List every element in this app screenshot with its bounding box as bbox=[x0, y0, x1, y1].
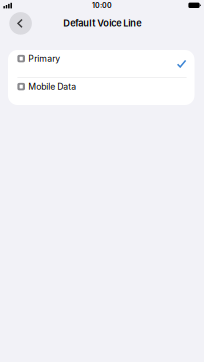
staticText: 10:00 bbox=[92, 1, 112, 10]
button[interactable]: Primary bbox=[8, 50, 194, 77]
staticText: Default Voice Line bbox=[63, 18, 141, 29]
staticText: Mobile Data bbox=[28, 81, 76, 92]
button[interactable]: Mobile Data bbox=[8, 77, 194, 104]
staticText: Primary bbox=[28, 53, 60, 64]
button[interactable]: Back bbox=[9, 12, 32, 35]
